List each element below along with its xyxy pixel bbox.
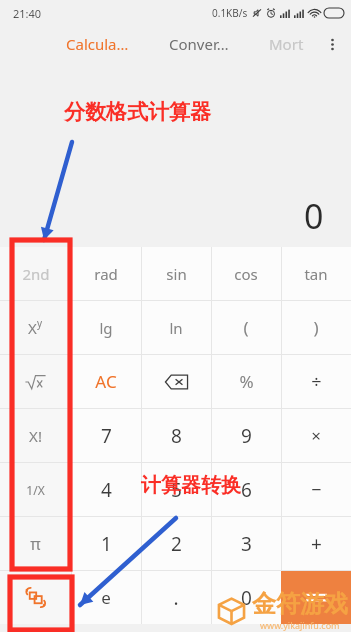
staticText: X! [29,426,42,446]
staticText: 4 [101,477,112,503]
staticText: X [28,318,37,338]
staticText: Mort [269,34,304,54]
staticText: 1/X [26,482,45,498]
staticText: 计算器转换 [141,473,241,498]
button[interactable]: 2 [141,517,211,570]
staticText: 9 [241,423,252,449]
button[interactable]: 1 [71,517,141,570]
button[interactable]: 7 [71,409,141,462]
button[interactable]: 5 [141,463,211,516]
staticText: e [101,586,111,609]
staticText: % [239,370,254,393]
staticText: 6 [241,477,252,503]
button[interactable]: . [141,571,211,624]
staticText: 2 [171,531,182,557]
staticText: ( [243,316,249,339]
staticText: 7 [101,423,112,449]
staticText: 金符游戏 [252,589,348,619]
staticText: ln [169,318,183,338]
button[interactable]: lg [71,301,141,354]
button[interactable]: tan [281,247,351,300]
staticText: lg [99,318,113,338]
button[interactable]: Equals [281,571,351,624]
staticText: Calcula… [66,34,129,54]
staticText: 分数格式计算器 [64,99,211,125]
button[interactable]: e [71,571,141,624]
staticText: 3 [241,531,252,557]
button[interactable]: Mort [263,29,310,59]
staticText: − [311,477,322,502]
staticText: tan [304,264,328,284]
button[interactable]: ln [141,301,211,354]
staticText: 1 [101,531,112,557]
staticText: 0.1KB/s [212,6,248,20]
button[interactable]: Convert calculator mode [0,571,71,624]
button[interactable]: 4 [71,463,141,516]
staticText: 8 [171,423,182,449]
button[interactable]: ) [281,301,351,354]
button[interactable]: × [281,409,351,462]
staticText: sin [166,264,187,284]
button[interactable]: 3 [211,517,281,570]
staticText: + [311,531,322,557]
button[interactable]: + [281,517,351,570]
button[interactable]: % [211,355,281,408]
button[interactable]: 9 [211,409,281,462]
button[interactable]: sin [141,247,211,300]
staticText: y [37,316,43,330]
staticText: 5 [171,477,182,503]
staticText: cos [234,264,258,284]
staticText: rad [94,264,118,284]
button[interactable]: π [0,517,71,570]
button[interactable]: ÷ [281,355,351,408]
button[interactable]: 8 [141,409,211,462]
button[interactable]: X to the power of Y [0,301,71,354]
button[interactable]: − [281,463,351,516]
staticText: www.yikajinfu.com [260,619,340,631]
button[interactable]: More options [318,30,346,58]
staticText: AC [95,370,117,393]
staticText: ÷ [311,369,322,394]
button[interactable]: cos [211,247,281,300]
button[interactable]: AC [71,355,141,408]
button[interactable]: rad [71,247,141,300]
button[interactable]: Square root [0,355,71,408]
button[interactable]: Calcula… [60,29,135,59]
button[interactable]: 0 [211,571,281,624]
staticText: Conver… [169,34,229,54]
staticText: 2nd [22,264,50,284]
button[interactable]: Backspace [141,355,211,408]
staticText: π [30,533,41,555]
button[interactable]: Conver… [163,29,235,59]
button[interactable]: ( [211,301,281,354]
staticText: . [173,585,179,611]
staticText: 0 [304,193,324,239]
button[interactable]: 6 [211,463,281,516]
button[interactable]: 1/X [0,463,71,516]
button[interactable]: 2nd [0,247,71,300]
staticText: 0 [241,585,252,611]
staticText: ) [313,316,319,339]
staticText: 21:40 [13,6,42,21]
staticText: × [311,424,321,447]
button[interactable]: X! [0,409,71,462]
